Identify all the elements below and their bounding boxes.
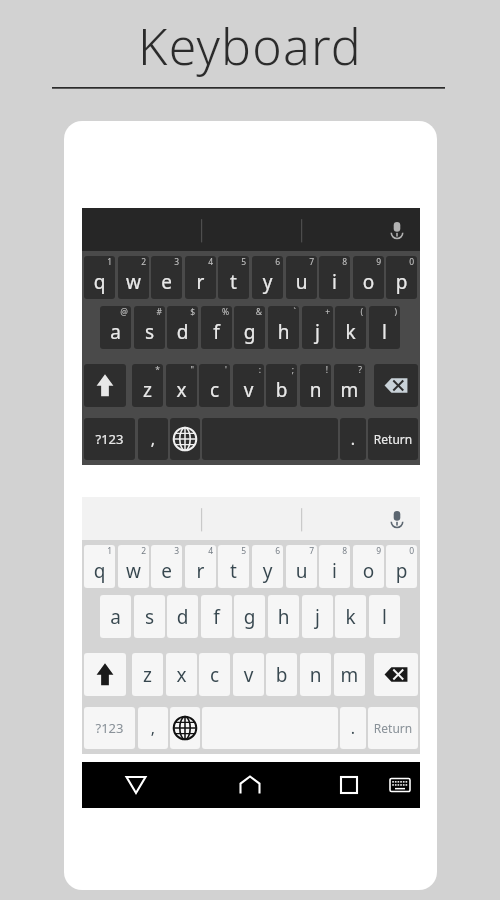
button[interactable]: +	[302, 306, 333, 349]
button[interactable]: x	[166, 653, 197, 696]
button[interactable]: z	[132, 653, 163, 696]
button[interactable]: .	[340, 707, 366, 749]
button[interactable]: b	[266, 653, 297, 696]
button[interactable]: 5	[218, 256, 249, 299]
button[interactable]: d	[167, 595, 198, 638]
button[interactable]: 0	[386, 545, 417, 588]
button[interactable]: g	[234, 595, 265, 638]
staticText: e	[151, 269, 182, 295]
button[interactable]: 9	[353, 256, 384, 299]
button[interactable]: 3	[151, 545, 182, 588]
button[interactable]: 8	[319, 256, 350, 299]
button[interactable]: a	[100, 595, 131, 638]
button[interactable]: ,	[138, 418, 168, 460]
button[interactable]: ;	[266, 364, 297, 407]
button[interactable]: Change language	[170, 418, 200, 460]
button[interactable]: 6	[252, 256, 283, 299]
button[interactable]: 7	[286, 545, 317, 588]
staticText: s	[134, 319, 165, 345]
button[interactable]: Return	[368, 707, 418, 749]
button[interactable]: k	[335, 595, 366, 638]
button[interactable]: Return	[368, 418, 418, 460]
button[interactable]: 7	[286, 256, 317, 299]
staticText: (	[360, 306, 363, 318]
button[interactable]: :	[233, 364, 264, 407]
button[interactable]: !	[300, 364, 331, 407]
staticText: r	[185, 269, 216, 295]
button[interactable]: h	[268, 595, 299, 638]
button[interactable]: 6	[252, 545, 283, 588]
button[interactable]: Recents	[333, 762, 365, 808]
button[interactable]: ,	[138, 707, 168, 749]
staticText: r	[185, 558, 216, 584]
button[interactable]: 8	[319, 545, 350, 588]
button[interactable]: Home	[233, 762, 267, 808]
button[interactable]: #	[134, 306, 165, 349]
button[interactable]: c	[199, 653, 230, 696]
button[interactable]: ?123	[84, 418, 135, 460]
button[interactable]: 4	[185, 256, 216, 299]
button[interactable]: f	[201, 595, 232, 638]
button[interactable]: *	[132, 364, 163, 407]
staticText: t	[218, 269, 249, 295]
button[interactable]: &	[234, 306, 265, 349]
button[interactable]: l	[369, 595, 400, 638]
button[interactable]: Voice input	[386, 508, 408, 530]
staticText: m	[334, 377, 365, 403]
button[interactable]: 1	[84, 545, 115, 588]
button[interactable]: 2	[118, 545, 149, 588]
button[interactable]: Voice input	[82, 497, 420, 540]
button[interactable]: 5	[218, 545, 249, 588]
button[interactable]: 0	[386, 256, 417, 299]
button[interactable]: $	[167, 306, 198, 349]
button[interactable]: Change language	[170, 707, 200, 749]
button[interactable]: s	[134, 595, 165, 638]
button[interactable]: .	[340, 418, 366, 460]
staticText: Return	[368, 720, 418, 736]
staticText: ?	[358, 364, 362, 376]
button[interactable]: Voice input	[82, 208, 420, 251]
staticText: 0	[409, 256, 414, 268]
staticText: b	[266, 377, 297, 403]
staticText: 6	[275, 256, 280, 268]
button[interactable]: 1	[84, 256, 115, 299]
button[interactable]: Shift	[84, 653, 126, 696]
button[interactable]: Shift	[84, 364, 126, 407]
button[interactable]: 3	[151, 256, 182, 299]
button[interactable]: %	[201, 306, 232, 349]
button[interactable]: n	[300, 653, 331, 696]
button[interactable]: Backspace	[374, 364, 418, 407]
staticText: e	[151, 558, 182, 584]
button[interactable]: '	[199, 364, 230, 407]
staticText: 9	[376, 256, 381, 268]
staticText: g	[234, 604, 265, 630]
button[interactable]: ?	[334, 364, 365, 407]
staticText: .	[340, 717, 366, 739]
button[interactable]: ?123	[84, 707, 135, 749]
button[interactable]: "	[166, 364, 197, 407]
button[interactable]: 9	[353, 545, 384, 588]
button[interactable]: 2	[118, 256, 149, 299]
button[interactable]: Backspace	[374, 653, 418, 696]
button[interactable]: Switch keyboard	[384, 762, 416, 808]
button[interactable]: 4	[185, 545, 216, 588]
staticText: '	[225, 364, 227, 376]
button[interactable]: @	[100, 306, 131, 349]
staticText: )	[394, 306, 397, 318]
staticText: d	[167, 604, 198, 630]
staticText: ;	[291, 364, 294, 376]
button[interactable]: v	[233, 653, 264, 696]
staticText: i	[319, 558, 350, 584]
button[interactable]: j	[302, 595, 333, 638]
button[interactable]: )	[369, 306, 400, 349]
button[interactable]: Voice input	[386, 219, 408, 241]
staticText: 1	[107, 545, 112, 557]
button[interactable]: `	[268, 306, 299, 349]
staticText: d	[167, 319, 198, 345]
staticText: ,	[138, 428, 168, 450]
staticText: j	[302, 604, 333, 630]
button[interactable]: m	[334, 653, 365, 696]
button[interactable]: (	[335, 306, 366, 349]
